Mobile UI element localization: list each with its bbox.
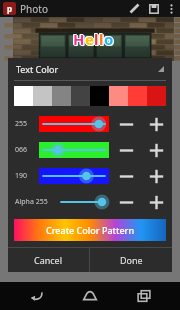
button[interactable]: Text Color — [8, 58, 172, 81]
staticText: e — [86, 30, 95, 50]
staticText: 255 — [15, 119, 39, 129]
staticText: e — [85, 30, 94, 50]
staticText: Text Color — [16, 63, 59, 75]
staticText: l — [99, 29, 104, 49]
staticText: o — [105, 30, 115, 50]
staticText: o — [105, 29, 115, 49]
staticText: e — [85, 29, 94, 49]
button[interactable]: 190 — [8, 164, 172, 187]
staticText: l — [94, 29, 99, 49]
staticText: Done — [120, 254, 143, 266]
staticText: p — [7, 3, 13, 14]
button[interactable]: Decrease — [116, 139, 137, 161]
staticText: Cancel — [34, 254, 63, 266]
staticText: H — [72, 28, 84, 48]
button[interactable]: 255 — [8, 112, 172, 135]
staticText: l — [95, 29, 100, 49]
staticText: Alpha 255 — [15, 197, 57, 207]
staticText: H — [74, 30, 86, 50]
button[interactable]: More options — [164, 2, 178, 16]
button[interactable]: Increase — [146, 191, 167, 213]
staticText: l — [100, 30, 105, 50]
staticText: 066 — [15, 145, 39, 155]
staticText: l — [98, 29, 103, 49]
staticText: H — [74, 29, 86, 49]
button[interactable]: Save — [144, 0, 164, 17]
button[interactable]: Create Color Pattern — [14, 219, 166, 241]
button[interactable]: Decrease — [116, 191, 137, 213]
staticText: l — [95, 30, 100, 50]
button[interactable]: Increase — [146, 165, 167, 187]
button[interactable]: Alpha 255 — [8, 190, 172, 213]
button[interactable]: Decrease — [116, 165, 137, 187]
staticText: 190 — [15, 171, 39, 181]
button[interactable]: Home — [72, 282, 108, 310]
staticText: l — [94, 30, 99, 50]
staticText: e — [86, 29, 95, 49]
staticText: H — [72, 29, 84, 49]
staticText: l — [100, 29, 105, 49]
staticText: Create Color Pattern — [46, 224, 135, 236]
staticText: l — [93, 28, 98, 48]
button[interactable]: Increase — [146, 139, 167, 161]
staticText: l — [94, 28, 99, 48]
button[interactable]: 066 — [8, 138, 172, 161]
staticText: o — [104, 29, 114, 49]
button[interactable]: Cancel — [8, 248, 89, 272]
staticText: l — [99, 28, 104, 48]
staticText: e — [85, 28, 94, 48]
staticText: o — [104, 30, 114, 50]
staticText: H — [73, 29, 85, 49]
staticText: H — [73, 28, 85, 48]
button[interactable]: Done — [90, 248, 172, 272]
staticText: Photo — [20, 2, 48, 16]
staticText: o — [103, 28, 113, 48]
staticText: H — [73, 30, 85, 50]
staticText: o — [103, 29, 113, 49]
staticText: l — [99, 30, 104, 50]
staticText: e — [84, 28, 93, 48]
staticText: e — [84, 29, 93, 49]
button[interactable]: Back — [18, 282, 54, 310]
button[interactable]: Edit — [124, 0, 144, 17]
button[interactable]: Decrease — [116, 113, 137, 135]
button[interactable]: App icon — [3, 2, 16, 15]
staticText: l — [93, 29, 98, 49]
button[interactable]: Recent apps — [126, 282, 162, 310]
button[interactable]: Increase — [146, 113, 167, 135]
staticText: l — [98, 28, 103, 48]
staticText: o — [104, 28, 114, 48]
